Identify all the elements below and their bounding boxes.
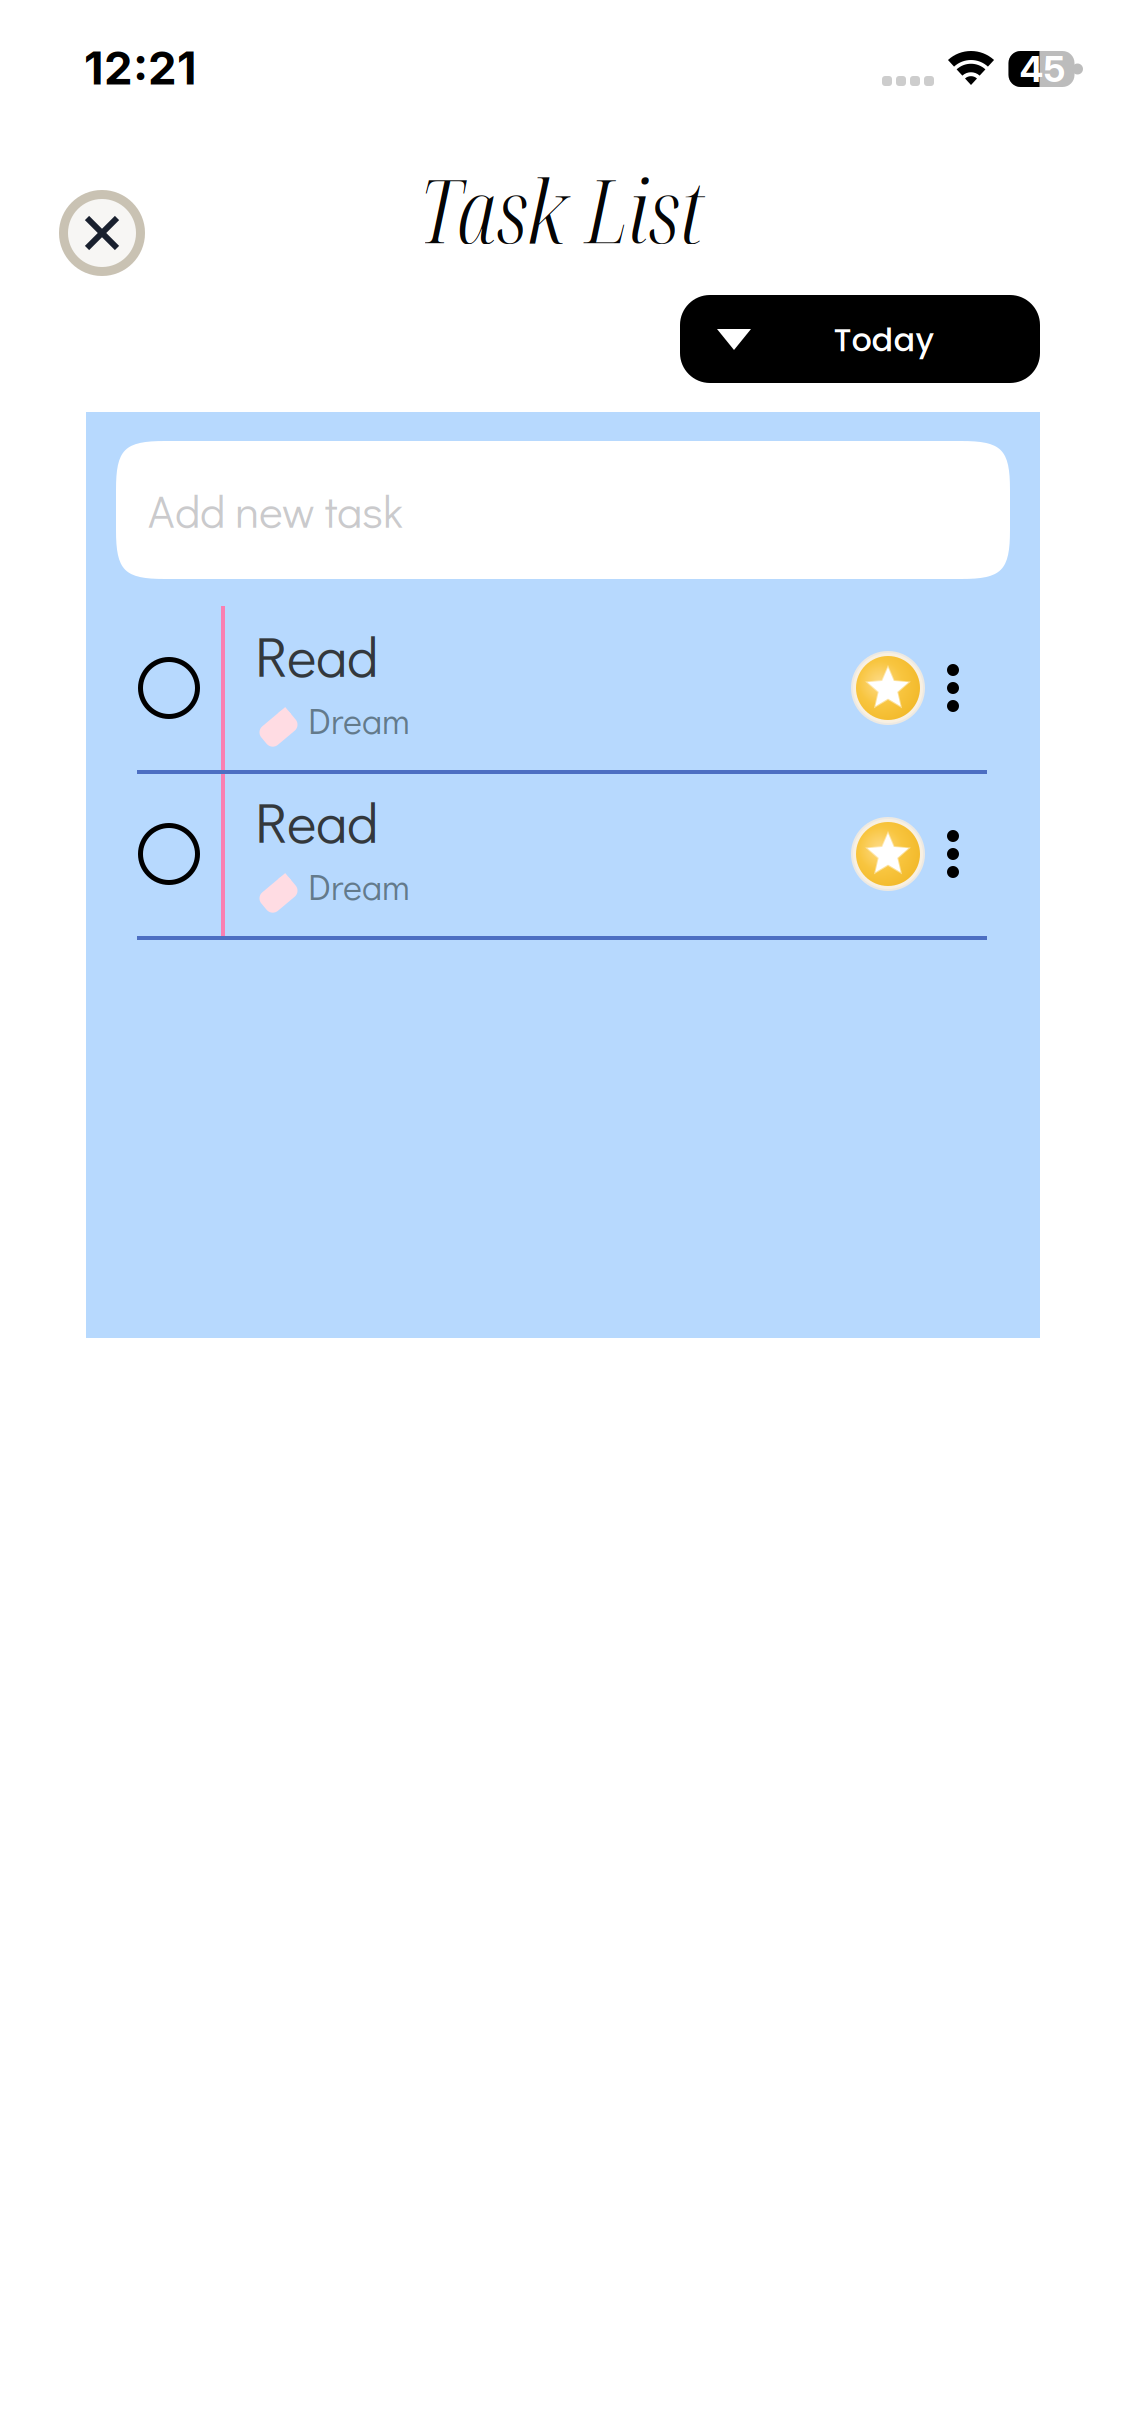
staticText: 45: [1019, 47, 1065, 91]
staticText: Add new task: [148, 480, 403, 540]
staticText: Dream: [308, 862, 410, 910]
staticText: 12:21: [84, 41, 197, 95]
staticText: Read: [255, 784, 378, 858]
button[interactable]: Star task: [833, 799, 943, 909]
staticText: Task List: [418, 149, 703, 269]
button[interactable]: Close: [42, 173, 162, 293]
button[interactable]: Add new task: [116, 441, 1010, 579]
button[interactable]: More options: [913, 633, 993, 743]
button[interactable]: Complete task: [114, 633, 224, 743]
staticText: Today: [833, 318, 934, 362]
staticText: Read: [255, 618, 378, 692]
button[interactable]: Today: [680, 295, 1040, 383]
button[interactable]: Complete task: [114, 799, 224, 909]
staticText: Dream: [308, 696, 410, 744]
button[interactable]: More options: [913, 799, 993, 909]
button[interactable]: Star task: [833, 633, 943, 743]
